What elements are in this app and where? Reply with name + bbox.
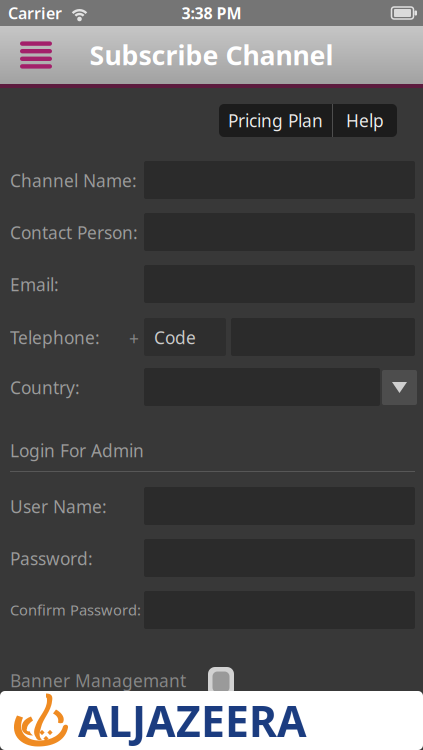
staticText: 3:38 PM <box>181 2 241 24</box>
staticText: ALJAZEERA <box>78 692 307 749</box>
button[interactable]: Help <box>333 104 397 137</box>
button[interactable]: Choose country <box>382 370 417 405</box>
staticText: Confirm Password: <box>10 600 141 619</box>
button[interactable]: Pricing Plan <box>219 104 332 137</box>
staticText: Telephone: <box>10 326 100 349</box>
staticText: Country: <box>10 376 80 399</box>
staticText: Pricing Plan <box>228 109 323 132</box>
staticText: + <box>129 327 139 350</box>
staticText: Contact Person: <box>10 221 138 244</box>
staticText: Carrier <box>8 2 62 24</box>
button[interactable]: Menu <box>0 26 64 84</box>
staticText: Channel Name: <box>10 169 137 192</box>
button[interactable]: Banner management toggle <box>208 667 234 697</box>
staticText: User Name: <box>10 495 107 518</box>
staticText: Subscribe Channel <box>89 37 333 73</box>
button[interactable]: Al Jazeera advertisement <box>0 691 423 750</box>
staticText: Help <box>346 109 384 132</box>
staticText: Password: <box>10 547 93 570</box>
staticText: Banner Managemant <box>10 669 186 692</box>
staticText: Code <box>154 326 196 349</box>
staticText: Email: <box>10 273 59 296</box>
staticText: Login For Admin <box>10 439 144 462</box>
